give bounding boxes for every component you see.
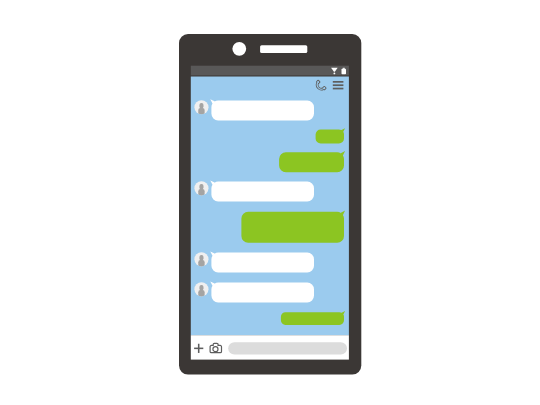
button[interactable] <box>211 251 314 272</box>
button[interactable] <box>279 151 344 172</box>
button[interactable]: Message input <box>228 342 347 354</box>
button[interactable]: Menu <box>331 77 347 94</box>
button[interactable] <box>211 180 314 201</box>
button[interactable] <box>241 211 344 243</box>
button[interactable] <box>211 99 314 120</box>
button[interactable] <box>281 311 345 325</box>
button[interactable]: Call <box>312 77 329 94</box>
button[interactable] <box>316 128 345 144</box>
button[interactable] <box>211 281 314 302</box>
button[interactable]: Add attachment <box>194 342 206 355</box>
button[interactable]: Take photo <box>207 342 225 356</box>
